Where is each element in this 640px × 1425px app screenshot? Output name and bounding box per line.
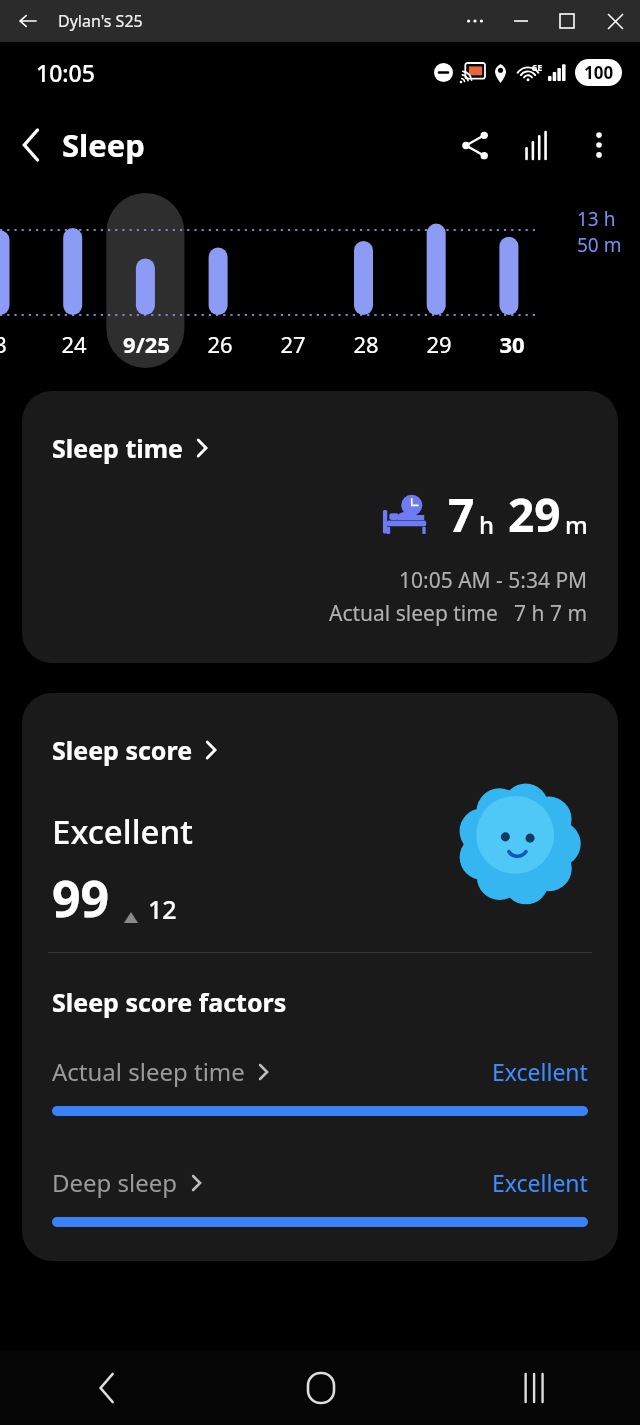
button[interactable]: Deep sleep — [22, 1166, 618, 1227]
staticText: 99 — [52, 864, 110, 932]
staticText: 100 — [584, 61, 614, 84]
button[interactable]: 29 — [402, 329, 475, 359]
staticText: 7 — [448, 483, 475, 546]
staticText: 10:05 — [36, 57, 95, 88]
button[interactable]: Sleep score — [52, 733, 216, 767]
button[interactable]: 3 — [0, 329, 37, 359]
button[interactable]: More options — [568, 114, 630, 176]
staticText: 6E — [532, 61, 543, 73]
staticText: 30 — [499, 329, 525, 359]
staticText: 27 — [280, 329, 306, 359]
staticText: 12 — [148, 892, 177, 926]
button[interactable]: 27 — [256, 329, 329, 359]
staticText: Deep sleep — [52, 1166, 178, 1199]
button[interactable]: Navigate up — [0, 114, 62, 176]
button[interactable]: Recent apps — [427, 1350, 640, 1425]
staticText: 13 h — [577, 206, 616, 232]
button[interactable]: 28 — [329, 329, 402, 359]
staticText: 3 — [0, 329, 7, 359]
staticText: Sleep score — [52, 733, 193, 767]
staticText: h — [479, 508, 495, 541]
button[interactable]: Back — [0, 1350, 214, 1425]
button[interactable]: Actual sleep time — [22, 1055, 618, 1116]
button[interactable]: Sleep time — [22, 391, 618, 663]
button[interactable]: Maximize — [544, 0, 590, 42]
button[interactable]: Home — [214, 1350, 427, 1425]
staticText: 26 — [207, 329, 233, 359]
staticText: 50 m — [577, 232, 622, 258]
staticText: 29 — [426, 329, 452, 359]
button[interactable]: Close — [590, 0, 640, 42]
staticText: Actual sleep time — [329, 599, 498, 628]
staticText: 24 — [61, 329, 87, 359]
staticText: Actual sleep time — [52, 1055, 245, 1088]
staticText: 9/25 — [123, 329, 170, 359]
staticText: 7 h 7 m — [514, 599, 588, 628]
staticText: Excellent — [492, 1056, 588, 1087]
staticText: 10:05 AM - 5:34 PM — [399, 566, 588, 595]
staticText: Sleep — [62, 124, 145, 166]
button[interactable]: 24 — [37, 329, 110, 359]
button[interactable]: Minimize — [498, 0, 544, 42]
staticText: 29 — [508, 483, 561, 546]
button[interactable]: Back — [8, 1, 48, 41]
staticText: Excellent — [52, 809, 193, 854]
button[interactable]: 26 — [183, 329, 256, 359]
button[interactable]: Share — [444, 114, 506, 176]
button[interactable]: Chart — [506, 114, 568, 176]
staticText: Dylan's S25 — [58, 10, 143, 32]
button[interactable]: 9/25 — [110, 329, 183, 359]
staticText: 28 — [353, 329, 379, 359]
staticText: Sleep score factors — [52, 985, 287, 1019]
staticText: m — [565, 508, 588, 541]
button[interactable]: 30 — [475, 329, 548, 359]
staticText: Excellent — [492, 1167, 588, 1198]
button[interactable]: More options — [452, 0, 498, 42]
staticText: Sleep time — [52, 431, 184, 465]
